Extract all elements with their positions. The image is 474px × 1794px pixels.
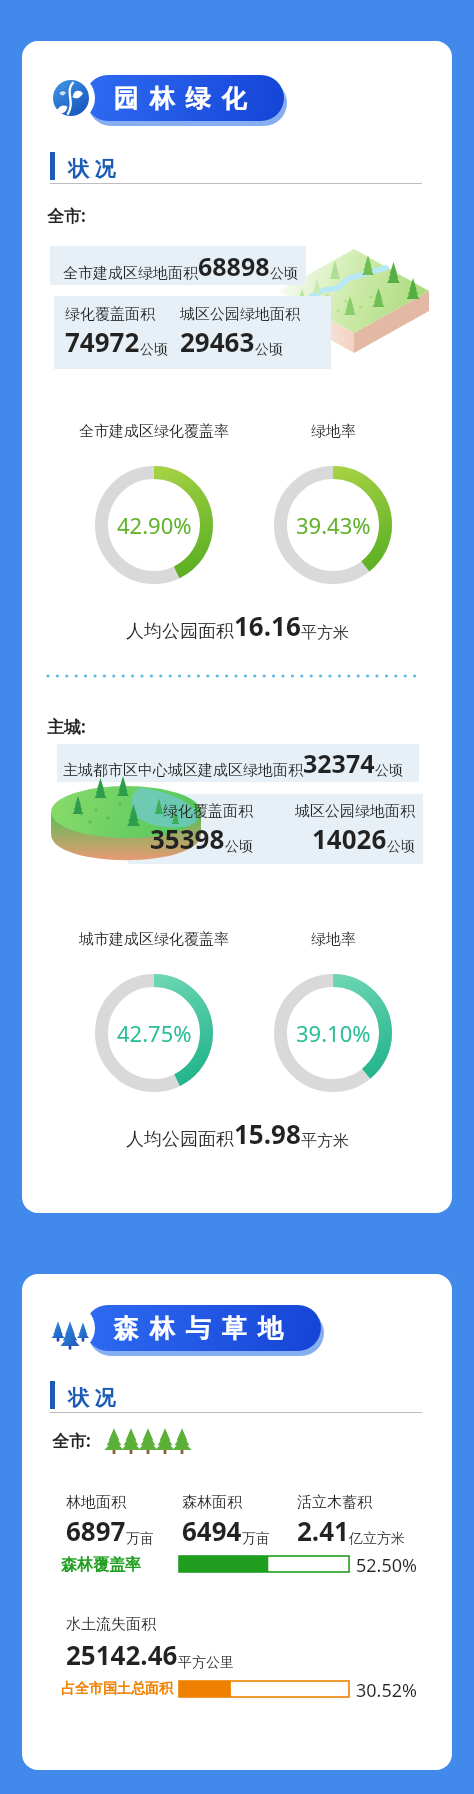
staticText: 园林绿化	[108, 83, 252, 114]
staticText: 全市:	[52, 1429, 91, 1452]
staticText: 绿地率	[311, 422, 356, 441]
staticText: 42.90%	[117, 510, 192, 540]
staticText: 29463	[180, 324, 255, 359]
staticText: 平方公里	[178, 1654, 234, 1672]
staticText: 绿化覆盖面积	[163, 802, 253, 821]
other: 森林与草地	[49, 1306, 93, 1350]
staticText: 42.75%	[117, 1018, 192, 1048]
staticText: 68898	[198, 249, 270, 283]
button[interactable]: 园林绿化	[47, 72, 246, 124]
staticText: 万亩	[126, 1530, 154, 1548]
staticText: 森林与草地	[108, 1313, 288, 1344]
staticText: 绿化覆盖面积	[65, 305, 155, 324]
staticText: 占全市国土总面积	[61, 1680, 173, 1698]
staticText: 14026	[312, 821, 387, 856]
staticText: 城区公园绿地面积	[295, 802, 415, 821]
staticText: 亿立方米	[349, 1530, 405, 1548]
staticText: 人均公园面积	[126, 620, 234, 643]
staticText: 全市建成区绿地面积	[63, 264, 198, 283]
staticText: 状 况	[68, 154, 116, 183]
button[interactable]: 森林与草地	[47, 1302, 283, 1354]
staticText: 25142.46	[66, 1637, 178, 1672]
staticText: 人均公园面积	[126, 1128, 234, 1151]
staticText: 32374	[303, 746, 375, 780]
staticText: 全市:	[47, 204, 86, 227]
staticText: 公顷	[255, 341, 283, 359]
staticText: 39.10%	[296, 1018, 371, 1048]
staticText: 城市建成区绿化覆盖率	[79, 930, 229, 949]
other: 园林绿化	[53, 80, 89, 116]
staticText: 6897	[66, 1513, 126, 1548]
staticText: 公顷	[375, 762, 403, 780]
staticText: 森林覆盖率	[61, 1555, 141, 1575]
staticText: 林地面积	[66, 1493, 126, 1512]
staticText: 公顷	[270, 265, 298, 283]
staticText: 35398	[150, 821, 225, 856]
staticText: 平方米	[301, 1131, 349, 1151]
staticText: 2.41	[297, 1513, 349, 1548]
staticText: 74972	[65, 324, 140, 359]
staticText: 森林面积	[182, 1493, 242, 1512]
staticText: 活立木蓄积	[297, 1493, 372, 1512]
staticText: 万亩	[242, 1530, 270, 1548]
staticText: 主城:	[47, 715, 86, 738]
staticText: 主城都市区中心城区建成区绿地面积	[63, 761, 303, 780]
staticText: 30.52%	[356, 1678, 417, 1703]
staticText: 52.50%	[356, 1553, 417, 1578]
staticText: 水土流失面积	[66, 1615, 156, 1634]
staticText: 公顷	[387, 838, 415, 856]
staticText: 16.16	[234, 608, 301, 643]
staticText: 公顷	[140, 341, 168, 359]
staticText: 全市建成区绿化覆盖率	[79, 422, 229, 441]
staticText: 绿地率	[311, 930, 356, 949]
staticText: 状 况	[68, 1383, 116, 1412]
staticText: 城区公园绿地面积	[180, 305, 300, 324]
staticText: 39.43%	[296, 510, 371, 540]
staticText: 公顷	[225, 838, 253, 856]
staticText: 15.98	[234, 1116, 301, 1151]
staticText: 6494	[182, 1513, 242, 1548]
staticText: 平方米	[301, 623, 349, 643]
